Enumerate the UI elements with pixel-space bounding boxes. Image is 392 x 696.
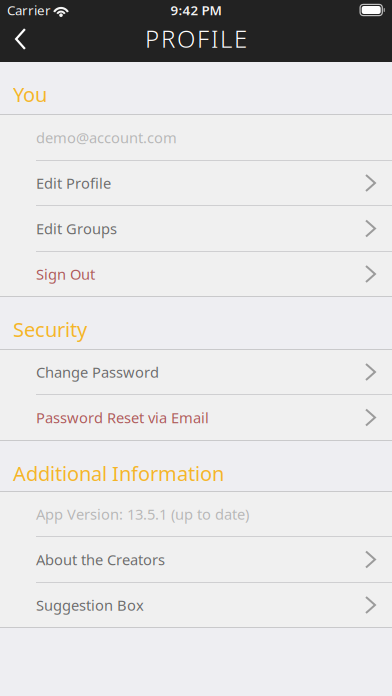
staticText: About the Creators (36, 550, 165, 569)
staticText: Security (13, 316, 87, 343)
button[interactable]: About the Creators (0, 537, 392, 582)
staticText: 9:42 PM (170, 1, 221, 19)
staticText: Additional Information (13, 460, 224, 487)
staticText: PROFILE (145, 23, 247, 54)
staticText: Change Password (36, 362, 159, 382)
button[interactable]: Edit Profile (0, 161, 392, 205)
button[interactable]: Password Reset via Email (0, 395, 392, 440)
staticText: Edit Groups (36, 219, 117, 238)
button[interactable]: Edit Groups (0, 206, 392, 251)
staticText: You (13, 81, 47, 108)
staticText: App Version: 13.5.1 (up to date) (36, 504, 249, 524)
staticText: Carrier (7, 1, 51, 19)
staticText: Sign Out (36, 264, 95, 284)
staticText: Edit Profile (36, 173, 111, 193)
staticText: Suggestion Box (36, 595, 144, 615)
staticText: demo@account.com (36, 128, 177, 147)
button[interactable]: Sign Out (0, 252, 392, 296)
button[interactable]: Suggestion Box (0, 583, 392, 627)
button[interactable]: Back (0, 20, 41, 62)
button[interactable]: Change Password (0, 350, 392, 394)
staticText: Password Reset via Email (36, 408, 209, 427)
